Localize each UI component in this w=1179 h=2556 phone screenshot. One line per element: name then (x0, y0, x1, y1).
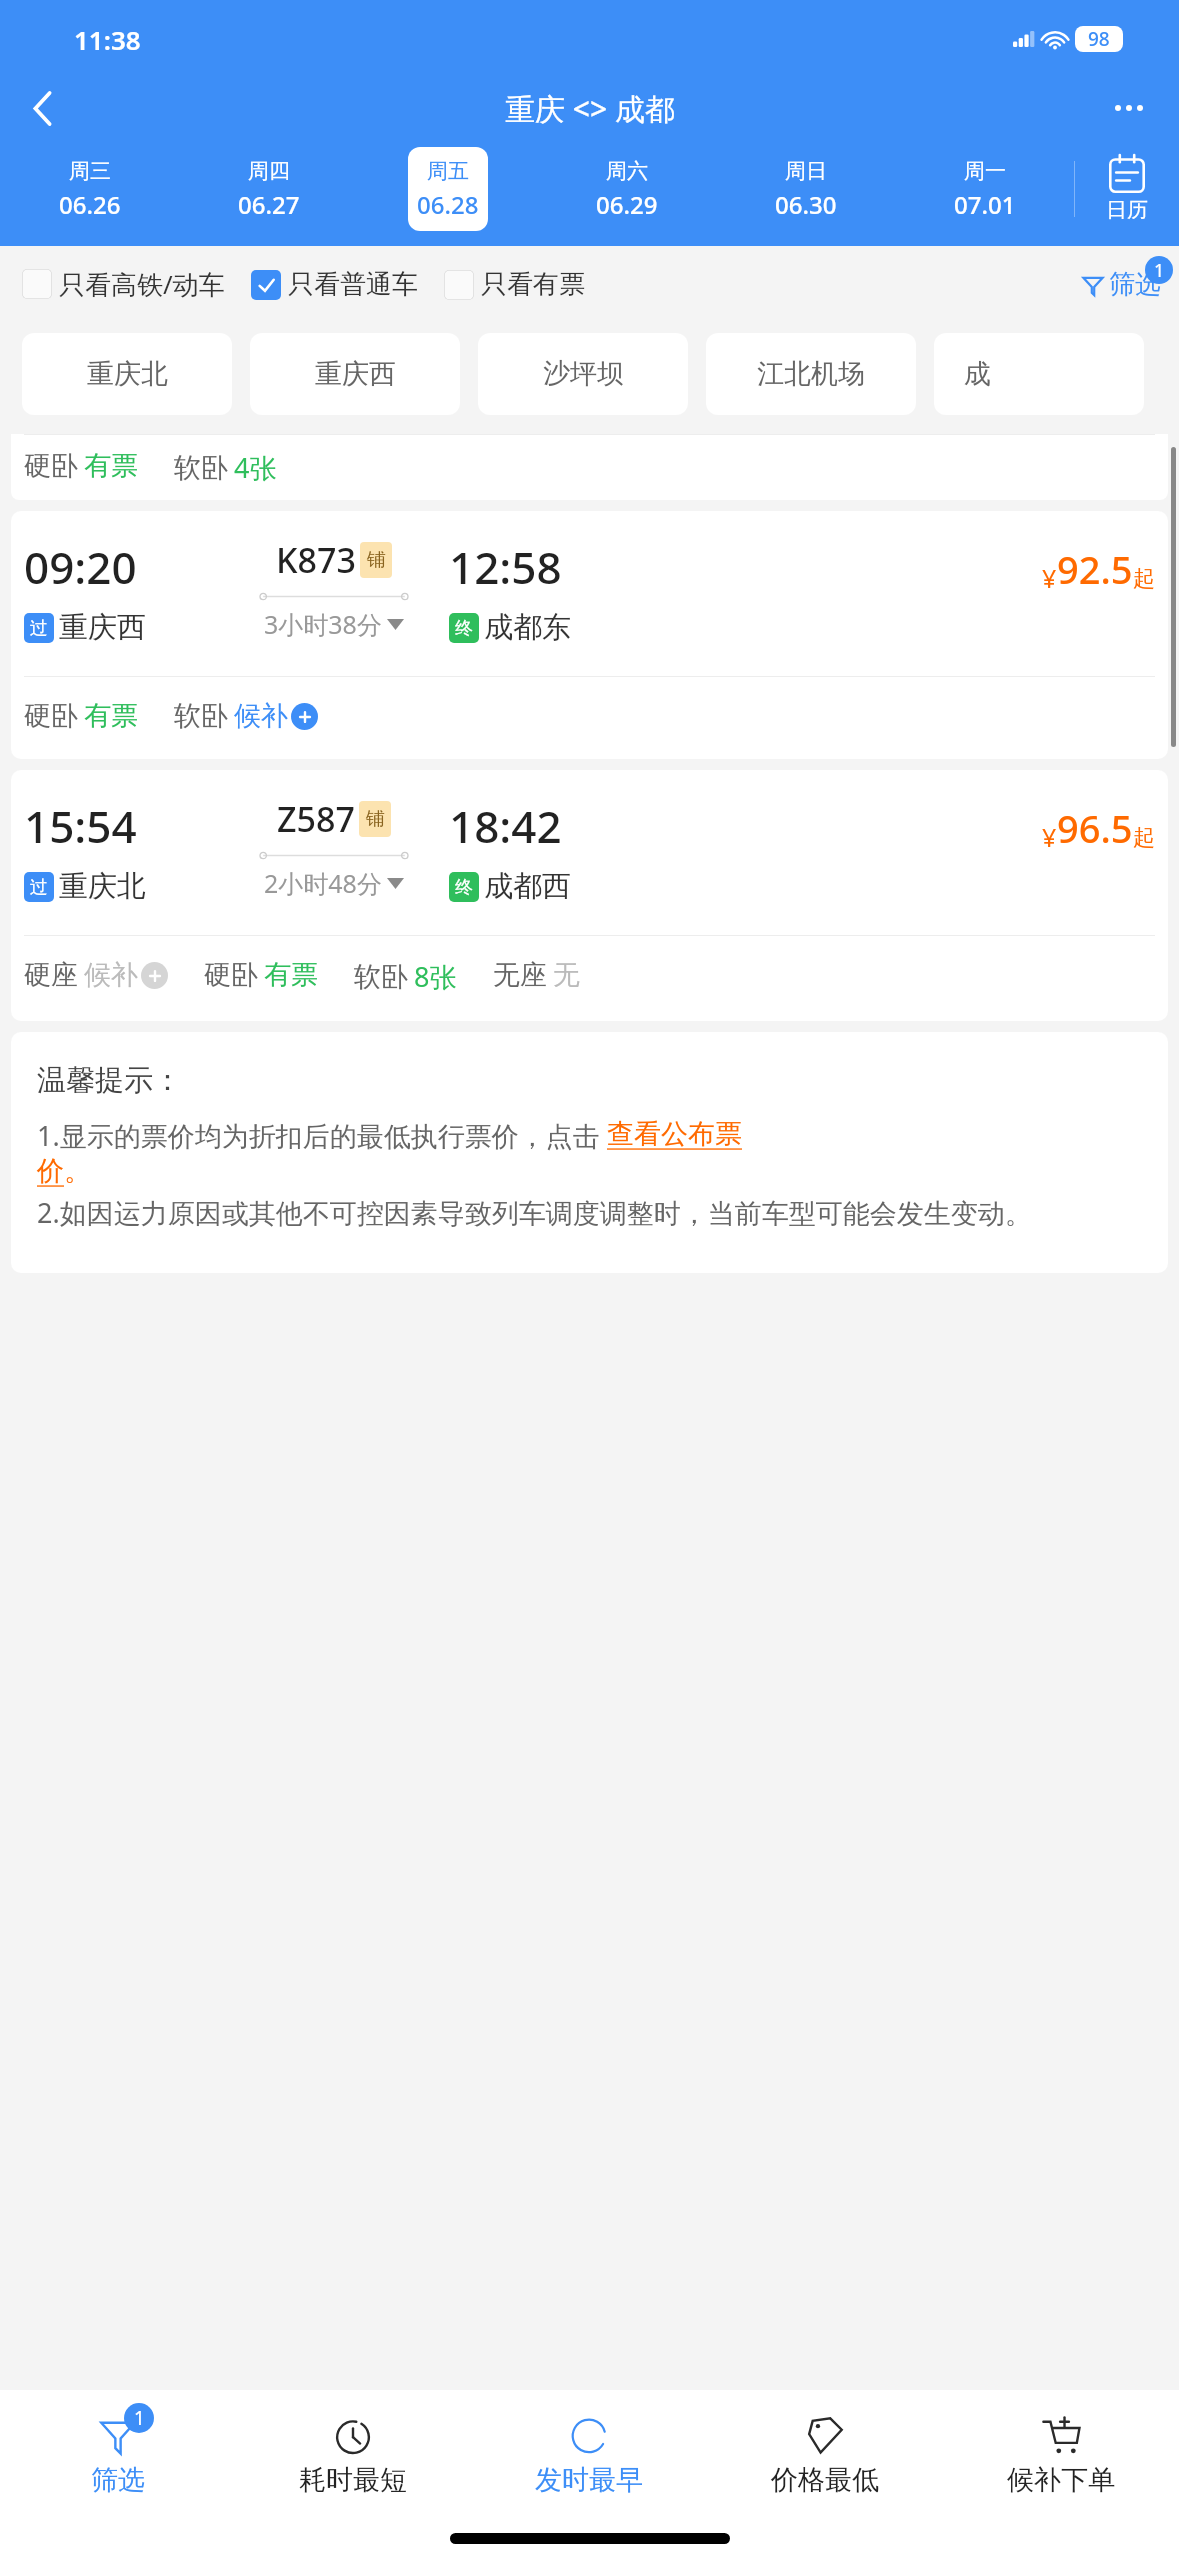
staticText: K873 (276, 537, 356, 583)
button[interactable]: 重庆西 (250, 333, 460, 415)
staticText: 软卧 (174, 699, 228, 733)
staticText: 候补 (84, 958, 138, 992)
staticText: 温馨提示： (37, 1062, 182, 1099)
button[interactable]: 耗时最短 (235, 2390, 471, 2520)
staticText: 终 (455, 617, 473, 640)
staticText: 重庆北 (59, 868, 146, 905)
button[interactable]: 周四 (179, 144, 358, 234)
button[interactable]: 1 (0, 2390, 235, 2520)
staticText: 硬卧 (204, 958, 258, 992)
staticText: 只看普通车 (288, 268, 418, 301)
staticText: 重庆北 (87, 357, 168, 391)
button[interactable]: 只看有票 (444, 268, 585, 301)
staticText: 成都东 (484, 609, 571, 646)
staticText: 耗时最短 (299, 2463, 407, 2497)
staticText: 终 (455, 876, 473, 899)
staticText: 重庆西 (315, 357, 396, 391)
staticText: 有票 (84, 699, 138, 733)
staticText: 重庆西 (59, 609, 146, 646)
staticText: 周五 (427, 158, 469, 184)
button[interactable]: 硬卧 (11, 434, 1168, 500)
staticText: 06.28 (417, 188, 479, 221)
staticText: 起 (1133, 565, 1155, 593)
staticText: ¥ (1042, 561, 1057, 595)
staticText: 92.5 (1057, 543, 1133, 595)
staticText: 重庆 <> 成都 (505, 88, 675, 129)
staticText: 1.显示的票价均为折扣后的最低执行票价，点击 (37, 1117, 607, 1154)
staticText: 江北机场 (757, 357, 865, 391)
button[interactable]: 沙坪坝 (478, 333, 688, 415)
staticText: 有票 (264, 958, 318, 992)
staticText: 06.30 (775, 188, 837, 221)
staticText: 15:54 (24, 796, 137, 856)
button[interactable]: 周五 (358, 144, 537, 234)
staticText: 有票 (84, 449, 138, 483)
button[interactable]: 只看高铁/动车 (22, 266, 225, 302)
staticText: 无 (553, 958, 580, 992)
staticText: 2小时48分 (264, 866, 382, 900)
staticText: 筛选 (1109, 268, 1161, 301)
button[interactable]: More options (1101, 80, 1157, 136)
button[interactable]: 周六 (537, 144, 716, 234)
staticText: 09:20 (24, 537, 137, 597)
staticText: 成都西 (484, 868, 571, 905)
staticText: 铺 (366, 807, 385, 831)
staticText: 无座 (493, 958, 547, 992)
staticText: 周三 (69, 158, 111, 184)
staticText: 06.27 (238, 188, 300, 221)
staticText: 06.26 (59, 188, 121, 221)
staticText: 起 (1133, 824, 1155, 852)
staticText: 筛选 (91, 2463, 145, 2497)
staticText: 96.5 (1057, 802, 1133, 854)
staticText: 07.01 (954, 188, 1016, 221)
staticText: 。 (64, 1154, 91, 1188)
staticText: 98 (1088, 26, 1110, 52)
button[interactable]: 价 (37, 1154, 64, 1188)
staticText: 候补 (234, 699, 288, 733)
staticText: 铺 (367, 548, 386, 572)
staticText: 过 (30, 617, 48, 640)
staticText: 只看有票 (481, 268, 585, 301)
button[interactable]: Back (14, 80, 70, 136)
staticText: 硬卧 (24, 449, 78, 483)
staticText: 周四 (248, 158, 290, 184)
button[interactable]: 价格最低 (707, 2390, 943, 2520)
staticText: 日历 (1106, 197, 1148, 223)
button[interactable]: 江北机场 (706, 333, 916, 415)
button[interactable]: 周三 (0, 144, 179, 234)
button[interactable]: 查看公布票 (607, 1117, 742, 1151)
staticText: 硬座 (24, 958, 78, 992)
staticText: 1 (134, 2405, 145, 2431)
staticText: 3小时38分 (264, 607, 382, 641)
staticText: 12:58 (449, 537, 562, 597)
staticText: 18:42 (449, 796, 562, 856)
staticText: 4张 (234, 449, 277, 486)
staticText: 11:38 (74, 22, 141, 57)
staticText: Z587 (277, 796, 355, 842)
staticText: 8张 (414, 958, 457, 995)
staticText: 1 (1154, 258, 1165, 283)
staticText: 硬卧 (24, 699, 78, 733)
staticText: 周六 (606, 158, 648, 184)
button[interactable]: 周一 (895, 144, 1074, 234)
staticText: 成 (964, 357, 991, 391)
button[interactable]: 重庆北 (22, 333, 232, 415)
staticText: 2.如因运力原因或其他不可控因素导致列车调度调整时，当前车型可能会发生变动。 (37, 1194, 1032, 1231)
button[interactable]: 只看普通车 (251, 268, 418, 301)
button[interactable]: 15:54 (11, 770, 1168, 1021)
staticText: 软卧 (354, 960, 408, 994)
staticText: ¥ (1042, 820, 1057, 854)
staticText: 过 (30, 876, 48, 899)
button[interactable]: 筛选 (1081, 268, 1161, 301)
button[interactable]: 日历 (1075, 144, 1179, 234)
button[interactable]: 候补下单 (943, 2390, 1179, 2520)
button[interactable]: 09:20 (11, 511, 1168, 759)
button[interactable]: 发时最早 (471, 2390, 707, 2520)
staticText: 候补下单 (1007, 2463, 1115, 2497)
button[interactable]: 周日 (716, 144, 895, 234)
staticText: 周一 (964, 158, 1006, 184)
button[interactable]: 成 (934, 333, 1144, 415)
staticText: 只看高铁/动车 (59, 266, 225, 302)
staticText: 周日 (785, 158, 827, 184)
staticText: 价格最低 (771, 2463, 879, 2497)
